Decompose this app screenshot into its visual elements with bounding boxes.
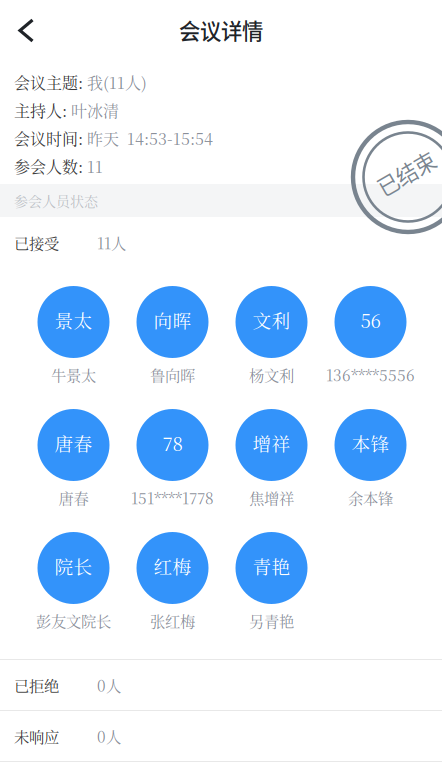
button[interactable]: 青艳 xyxy=(222,532,321,637)
button[interactable]: 本锋 xyxy=(321,409,420,514)
staticText: 唐春 xyxy=(54,430,92,456)
staticText: 红梅 xyxy=(153,553,191,579)
staticText: 唐春 xyxy=(58,486,88,508)
staticText: 11人 xyxy=(97,231,126,253)
staticText: 昨天 14:53-15:54 xyxy=(87,126,213,149)
button[interactable]: 景太 xyxy=(24,286,123,391)
staticText: 院长 xyxy=(54,553,92,579)
staticText: 参会人员状态 xyxy=(14,190,98,210)
staticText: 余本锋 xyxy=(348,486,393,508)
button[interactable]: 增祥 xyxy=(222,409,321,514)
button[interactable]: 向晖 xyxy=(123,286,222,391)
staticText: 彭友文院长 xyxy=(36,609,111,631)
staticText: 已拒绝 xyxy=(14,674,59,696)
button[interactable]: 已拒绝 xyxy=(0,660,442,711)
button[interactable]: 56 xyxy=(321,286,420,391)
staticText: 叶冰清 xyxy=(71,98,119,121)
staticText: 参会人数: xyxy=(14,154,87,177)
staticText: 景太 xyxy=(54,307,92,333)
staticText: 向晖 xyxy=(153,307,191,333)
staticText: 增祥 xyxy=(252,430,290,456)
staticText: 牛景太 xyxy=(51,363,96,385)
staticText: 青艳 xyxy=(252,553,290,579)
staticText: 主持人: xyxy=(14,98,71,121)
staticText: 鲁向晖 xyxy=(150,363,195,385)
staticText: 已接受 xyxy=(14,231,59,253)
staticText: 会议主题: xyxy=(14,70,87,93)
staticText: 杨文利 xyxy=(249,363,294,385)
staticText: 0人 xyxy=(97,674,121,696)
staticText: 会议时间: xyxy=(14,126,87,149)
staticText: 文利 xyxy=(252,307,290,333)
button[interactable]: 院长 xyxy=(24,532,123,637)
staticText: 另青艳 xyxy=(249,609,294,631)
staticText: 已结束 xyxy=(374,158,437,188)
staticText: 11 xyxy=(87,154,103,177)
button[interactable]: 红梅 xyxy=(123,532,222,637)
staticText: 张红梅 xyxy=(150,609,195,631)
staticText: 会议详情 xyxy=(179,15,263,45)
button[interactable]: 78 xyxy=(123,409,222,514)
staticText: 136****5556 xyxy=(326,363,415,385)
staticText: 焦增祥 xyxy=(249,486,294,508)
staticText: 151****1778 xyxy=(131,486,214,508)
button[interactable]: Back xyxy=(0,0,52,60)
staticText: 56 xyxy=(360,307,380,333)
staticText: 78 xyxy=(162,430,182,456)
staticText: 未响应 xyxy=(14,725,59,747)
staticText: 我(11人) xyxy=(87,70,147,93)
staticText: 本锋 xyxy=(351,430,389,456)
button[interactable]: 唐春 xyxy=(24,409,123,514)
staticText: 0人 xyxy=(97,725,121,747)
button[interactable]: 未响应 xyxy=(0,711,442,762)
button[interactable]: 文利 xyxy=(222,286,321,391)
